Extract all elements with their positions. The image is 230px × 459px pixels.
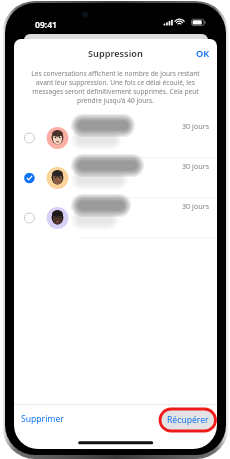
staticText: OK — [196, 47, 210, 59]
button[interactable]: Supprimer — [21, 413, 69, 425]
staticText: 30 jours — [182, 201, 210, 211]
staticText: Récupérer — [167, 414, 209, 426]
button[interactable]: 30 jours — [14, 118, 217, 158]
button[interactable]: OK — [193, 47, 212, 59]
staticText: 09:41 — [35, 19, 58, 31]
button[interactable]: Récupérer — [161, 409, 214, 431]
staticText: 30 jours — [182, 161, 210, 171]
staticText: Supprimer — [21, 413, 64, 425]
staticText: 30 jours — [182, 121, 210, 131]
button[interactable]: 30 jours — [14, 198, 217, 238]
staticText: Les conversations affichent le nombre de… — [29, 69, 202, 105]
button[interactable]: 30 jours — [14, 158, 217, 198]
staticText: Suppressions — [88, 47, 144, 59]
